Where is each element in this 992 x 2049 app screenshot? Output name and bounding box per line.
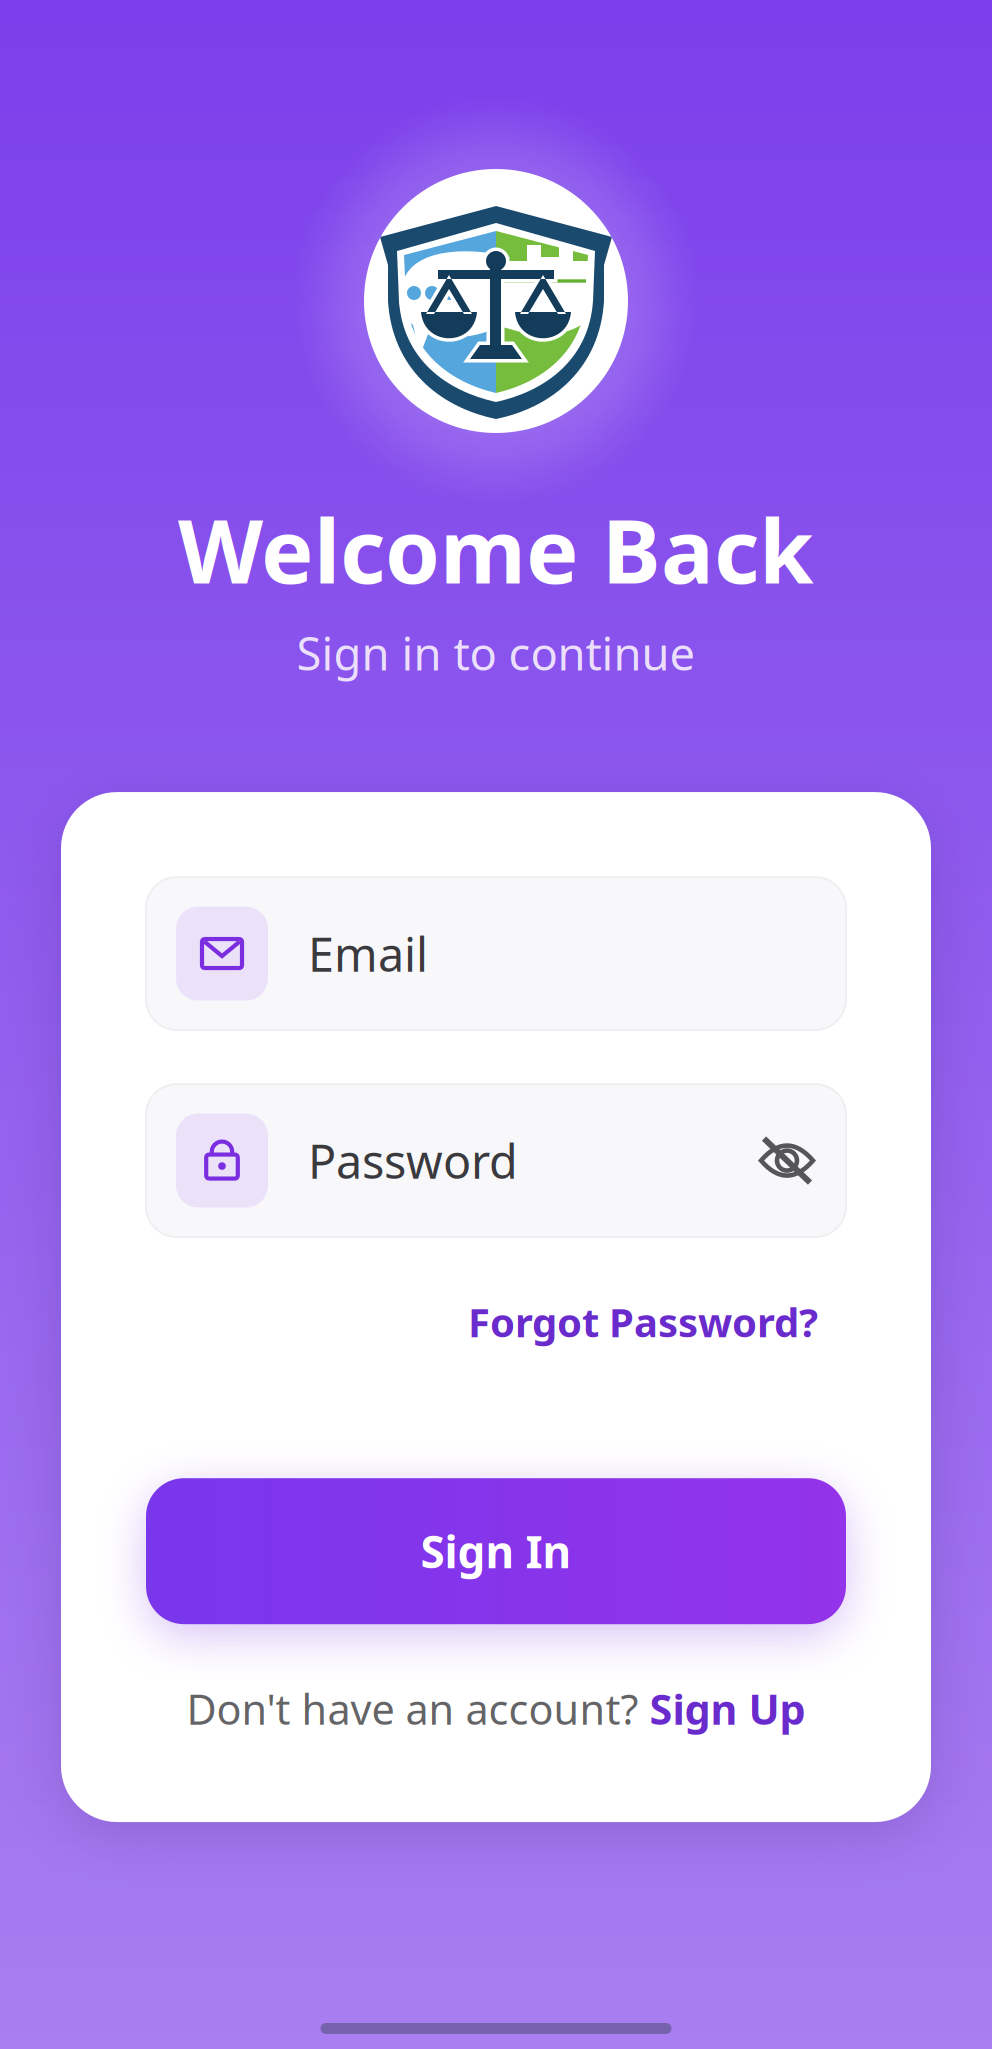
staticText: Password — [308, 1130, 518, 1192]
button[interactable]: Show password — [758, 1106, 846, 1216]
staticText: Sign Up — [649, 1681, 805, 1736]
button[interactable]: Sign Up — [649, 1681, 805, 1736]
staticText: Sign In — [420, 1522, 571, 1580]
button[interactable]: Email — [146, 877, 846, 1030]
staticText: Don't have an account? — [186, 1681, 649, 1736]
button[interactable]: Sign In — [146, 1478, 846, 1624]
staticText: Forgot Password? — [468, 1295, 818, 1348]
staticText: Sign in to continue — [296, 623, 695, 683]
button[interactable]: Forgot Password? — [468, 1295, 818, 1348]
staticText: Email — [308, 923, 428, 985]
staticText: Welcome Back — [178, 491, 814, 608]
